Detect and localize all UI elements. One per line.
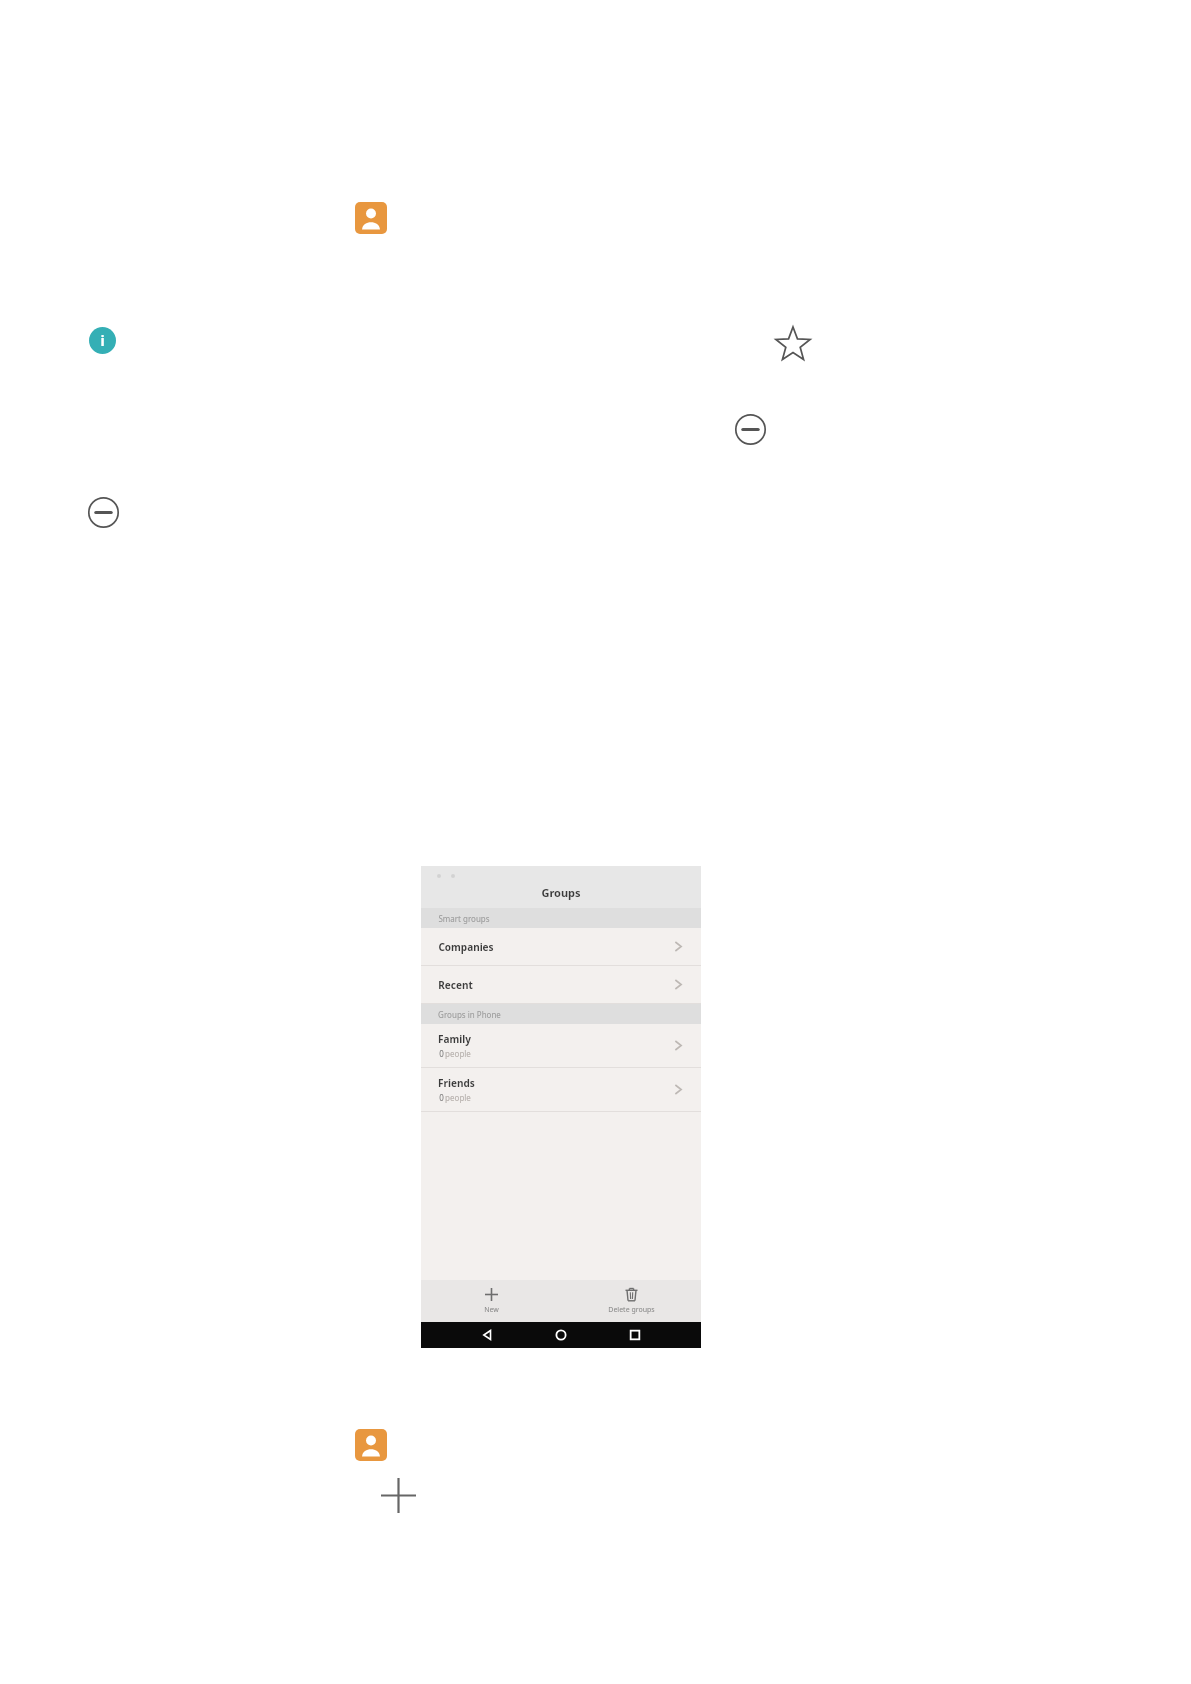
button[interactable]: Friends (421, 1068, 701, 1111)
button[interactable]: Favourite (773, 325, 813, 365)
button[interactable]: Contacts (355, 202, 387, 234)
staticText: Family (438, 1032, 471, 1046)
staticText: Groups in Phone (438, 1009, 501, 1020)
button[interactable]: Recents (628, 1328, 642, 1342)
button[interactable]: Back (481, 1328, 495, 1342)
button[interactable]: Delete groups (561, 1280, 701, 1322)
button[interactable]: Companies (421, 928, 701, 965)
button[interactable]: Remove (733, 412, 768, 447)
button[interactable]: Remove (86, 495, 121, 530)
staticText: Recent (438, 978, 473, 992)
staticText: Smart groups (438, 913, 490, 924)
button[interactable]: Family (421, 1024, 701, 1067)
staticText: Groups (541, 885, 581, 900)
button[interactable]: Recent (421, 966, 701, 1003)
button[interactable]: Add (381, 1478, 416, 1513)
staticText: Friends (438, 1076, 475, 1090)
staticText: 0 (438, 1048, 445, 1059)
staticText: people (445, 1092, 471, 1103)
staticText: Companies (438, 940, 494, 954)
staticText: New (484, 1305, 499, 1315)
staticText: i (100, 331, 105, 350)
staticText: Delete groups (608, 1305, 655, 1315)
staticText: 0 (438, 1092, 445, 1103)
button[interactable]: Home (554, 1328, 568, 1342)
button[interactable]: Info (89, 327, 116, 354)
staticText: people (445, 1048, 471, 1059)
button[interactable]: New (421, 1280, 561, 1322)
button[interactable]: Contacts (355, 1429, 387, 1461)
